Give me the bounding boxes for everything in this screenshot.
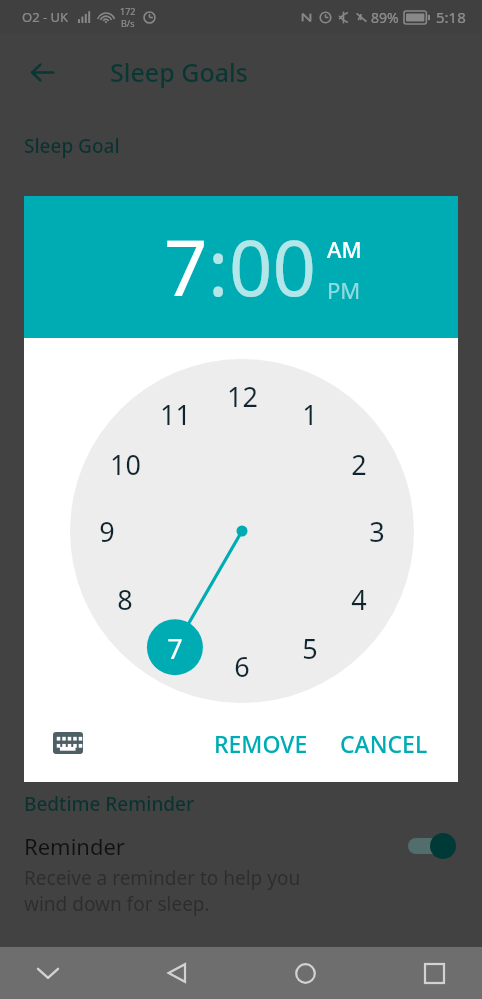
button[interactable]: Reminder — [0, 831, 482, 861]
button[interactable]: 00 — [229, 215, 316, 319]
staticText: 5 — [302, 630, 318, 667]
staticText: 2 — [351, 446, 367, 483]
staticText: 4 — [351, 581, 367, 618]
button[interactable]: 6 — [216, 646, 268, 686]
staticText: 7 — [167, 630, 183, 667]
button[interactable]: REMOVE — [204, 720, 318, 767]
button[interactable]: Recent apps — [408, 947, 460, 999]
staticText: B/s — [121, 17, 135, 29]
button[interactable]: 5 — [284, 628, 336, 668]
staticText: Bedtime Reminder — [24, 791, 195, 817]
staticText: 6 — [234, 648, 250, 685]
button[interactable]: Back — [151, 947, 203, 999]
staticText: REMOVE — [214, 728, 308, 759]
staticText: 7 — [164, 215, 208, 319]
staticText: CANCEL — [340, 728, 428, 759]
button[interactable]: 2 — [333, 444, 385, 484]
button[interactable] — [402, 833, 458, 859]
staticText: 8 — [117, 581, 133, 618]
staticText: 5:18 — [436, 7, 466, 27]
button[interactable]: 7 — [149, 628, 201, 668]
button[interactable]: Back — [18, 48, 66, 96]
button[interactable]: AM — [327, 234, 362, 264]
button[interactable]: Home — [279, 947, 331, 999]
staticText: 11 — [160, 396, 191, 433]
staticText: 12 — [227, 378, 258, 415]
button[interactable]: Switch to keyboard input — [46, 721, 90, 765]
staticText: 172 — [120, 5, 136, 17]
staticText: PM — [327, 275, 361, 305]
staticText: 00 — [229, 215, 316, 319]
staticText: 3 — [369, 513, 385, 550]
staticText: 9 — [99, 513, 115, 550]
staticText: Reminder — [24, 831, 125, 861]
button[interactable]: 4 — [333, 579, 385, 619]
button[interactable]: 9 — [81, 511, 133, 551]
staticText: Sleep Goals — [110, 55, 248, 89]
button[interactable]: 1 — [284, 394, 336, 434]
button[interactable]: 3 — [351, 511, 403, 551]
staticText: O2 - UK — [22, 8, 69, 26]
staticText: Receive a reminder to help you wind down… — [24, 865, 301, 917]
button[interactable]: CANCEL — [330, 720, 438, 767]
staticText: 10 — [110, 446, 141, 483]
staticText: AM — [327, 234, 362, 264]
staticText: 1 — [302, 396, 318, 433]
button[interactable]: 11 — [149, 394, 201, 434]
button[interactable]: Hide keyboard — [22, 947, 74, 999]
button[interactable]: 10 — [99, 444, 151, 484]
staticText: Sleep Goal — [24, 133, 120, 159]
button[interactable]: 7 — [164, 215, 208, 319]
button[interactable]: PM — [327, 275, 361, 305]
staticText: 89% — [371, 8, 399, 27]
staticText: : — [208, 215, 229, 319]
button[interactable]: 8 — [99, 579, 151, 619]
button[interactable]: 12 — [216, 376, 268, 416]
